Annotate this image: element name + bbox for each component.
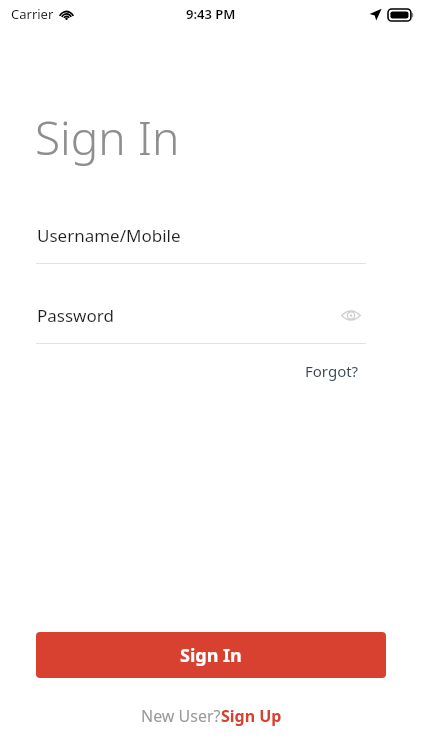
staticText: Forgot? — [305, 361, 359, 381]
staticText: New User? — [141, 705, 221, 727]
staticText: 9:43 PM — [186, 5, 236, 23]
button[interactable]: Show password — [336, 300, 366, 330]
staticText: Carrier — [11, 5, 54, 23]
staticText: Username/Mobile — [37, 224, 181, 247]
staticText: Sign In — [180, 643, 242, 668]
staticText: Sign In — [35, 106, 180, 169]
button[interactable]: Forgot? — [299, 357, 365, 385]
staticText: Sign Up — [221, 705, 282, 727]
staticText: Password — [37, 304, 114, 327]
button[interactable]: Sign In — [36, 632, 386, 678]
button[interactable]: Sign Up — [221, 705, 282, 727]
button[interactable]: Username/Mobile — [36, 214, 366, 264]
